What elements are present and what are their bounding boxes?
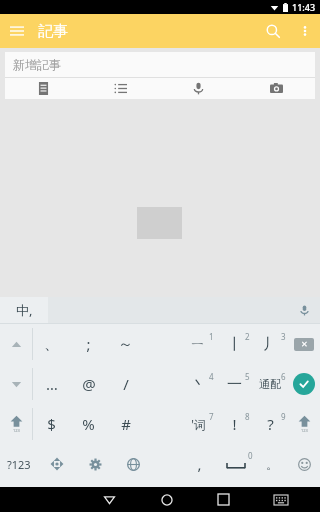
button[interactable]: … xyxy=(33,364,70,404)
staticText: ?123 xyxy=(7,457,31,472)
button[interactable]: 一 xyxy=(216,364,252,404)
staticText: 記事 xyxy=(38,22,68,41)
staticText: 。 xyxy=(266,457,278,472)
staticText: 4 xyxy=(209,371,214,382)
staticText: 11:43 xyxy=(292,1,316,13)
button[interactable]: Arrow keys xyxy=(38,444,76,484)
button[interactable]: Emoji xyxy=(288,444,320,484)
button[interactable]: # xyxy=(107,404,144,444)
staticText: 8 xyxy=(245,411,250,422)
staticText: 、 xyxy=(44,335,59,354)
button[interactable]: Page up xyxy=(0,324,32,364)
staticText: % xyxy=(82,414,95,434)
button[interactable]: Page down xyxy=(0,364,32,404)
button[interactable]: Menu xyxy=(0,14,34,48)
button[interactable]: ! xyxy=(216,404,252,444)
button[interactable]: Keyboard xyxy=(252,487,309,512)
button[interactable]: ㄧ xyxy=(180,324,216,364)
button[interactable]: Photo note xyxy=(237,78,315,99)
staticText: 6 xyxy=(281,371,286,382)
staticText: , xyxy=(197,454,202,474)
button[interactable]: ; xyxy=(70,324,107,364)
button[interactable]: Delete xyxy=(288,324,320,364)
button[interactable]: ?123 xyxy=(0,444,38,484)
staticText: 123 xyxy=(301,428,308,433)
button[interactable]: Voice input xyxy=(288,297,320,323)
button[interactable]: Search xyxy=(256,14,290,48)
button[interactable]: Shift xyxy=(0,404,32,444)
button[interactable]: @ xyxy=(70,364,107,404)
staticText: ～ xyxy=(118,335,133,354)
staticText: 9 xyxy=(281,411,286,422)
staticText: ㄧ xyxy=(190,335,206,354)
staticText: 5 xyxy=(245,371,250,382)
button[interactable]: '词 xyxy=(180,404,216,444)
staticText: 丨 xyxy=(227,335,242,354)
staticText: ? xyxy=(267,414,274,434)
button[interactable]: Space xyxy=(216,444,255,484)
button[interactable]: Shift xyxy=(288,404,320,444)
button[interactable]: 中, xyxy=(0,297,48,323)
staticText: 0 xyxy=(248,450,253,461)
staticText: $ xyxy=(47,414,56,434)
staticText: 丶 xyxy=(191,375,206,394)
staticText: … xyxy=(46,374,58,394)
button[interactable]: 新增記事 xyxy=(5,52,315,77)
staticText: 7 xyxy=(209,411,214,422)
button[interactable]: , xyxy=(183,444,216,484)
button[interactable]: 。 xyxy=(255,444,288,484)
staticText: 新增記事 xyxy=(13,57,61,72)
button[interactable]: 丨 xyxy=(216,324,252,364)
button[interactable]: 丶 xyxy=(180,364,216,404)
button[interactable]: Back xyxy=(81,487,138,512)
button[interactable]: ? xyxy=(252,404,288,444)
button[interactable]: 丿 xyxy=(252,324,288,364)
button[interactable]: Home xyxy=(138,487,195,512)
button[interactable]: More options xyxy=(290,16,320,46)
staticText: 1 xyxy=(209,331,214,342)
staticText: ✕ xyxy=(301,340,308,349)
staticText: # xyxy=(121,414,131,434)
button[interactable]: Voice note xyxy=(159,78,237,99)
button[interactable]: % xyxy=(70,404,107,444)
staticText: ! xyxy=(232,414,237,434)
staticText: 3 xyxy=(281,331,286,342)
button[interactable]: Settings xyxy=(76,444,114,484)
button[interactable]: 、 xyxy=(33,324,70,364)
staticText: 中, xyxy=(16,301,33,319)
staticText: ; xyxy=(86,334,91,354)
staticText: / xyxy=(123,374,129,394)
staticText: @ xyxy=(82,374,96,394)
button[interactable]: Checklist xyxy=(5,78,82,99)
button[interactable]: 通配 xyxy=(252,364,288,404)
staticText: 一 xyxy=(227,375,242,394)
button[interactable]: Recent apps xyxy=(195,487,252,512)
button[interactable]: Change language xyxy=(114,444,152,484)
staticText: 丿 xyxy=(263,335,278,354)
button[interactable]: List xyxy=(82,78,159,99)
button[interactable]: $ xyxy=(33,404,70,444)
staticText: 2 xyxy=(245,331,250,342)
staticText: '词 xyxy=(191,416,206,432)
button[interactable]: Enter xyxy=(288,364,320,404)
staticText: 通配 xyxy=(259,377,281,391)
button[interactable]: / xyxy=(107,364,144,404)
staticText: 123 xyxy=(13,428,20,433)
button[interactable]: ～ xyxy=(107,324,144,364)
